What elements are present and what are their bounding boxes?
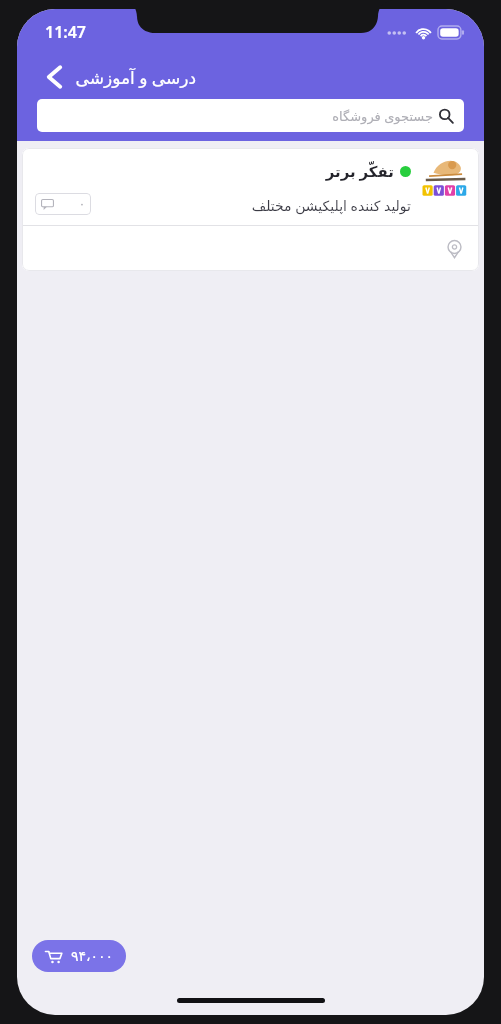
staticText: 11:47 (44, 21, 86, 43)
button[interactable]: Location (441, 236, 467, 262)
button[interactable]: جستجوی فروشگاه (37, 99, 464, 132)
button[interactable]: ۹۴،۰۰۰ (32, 940, 126, 972)
staticText: جستجوی فروشگاه (332, 107, 433, 125)
staticText: تولید کننده اپلیکیشن مختلف (251, 196, 411, 215)
other: Back (39, 62, 69, 92)
staticText: ۰ (79, 198, 85, 211)
staticText: ۹۴،۰۰۰ (70, 948, 113, 964)
staticText: درسی و آموزشی (75, 66, 196, 89)
staticText: تفکّر برتر (325, 161, 394, 181)
button[interactable]: تفکّر برتر (22, 148, 479, 271)
button[interactable]: ۰ (35, 193, 91, 215)
button[interactable]: Back (17, 55, 484, 99)
